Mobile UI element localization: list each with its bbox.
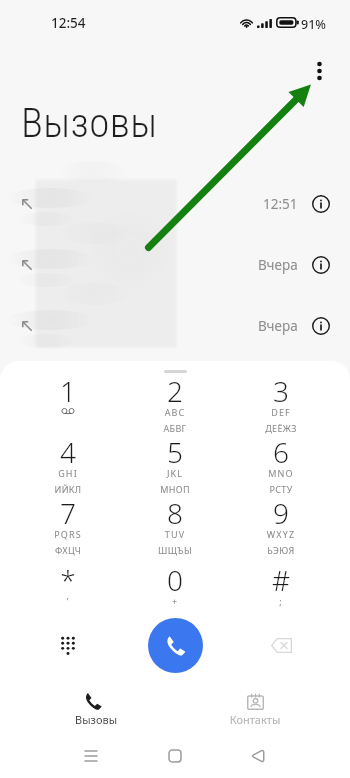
button[interactable]: Back [241, 739, 275, 773]
staticText: PQRS [20, 528, 116, 540]
staticText: Вызовы [21, 99, 158, 147]
button[interactable]: 7 [20, 494, 116, 550]
staticText: ЬЭЮЯ [233, 544, 329, 556]
button[interactable]: 8 [127, 494, 223, 550]
staticText: МНОП [127, 483, 223, 495]
staticText: TUV [127, 528, 223, 540]
staticText: ; [233, 595, 329, 607]
button[interactable]: Вызовы [46, 678, 146, 735]
button[interactable]: 6 [233, 433, 329, 489]
button[interactable]: Call details [307, 190, 335, 218]
button[interactable]: 4 [20, 433, 116, 489]
button[interactable]: Вчера [0, 295, 350, 356]
staticText: 8 [127, 494, 223, 532]
staticText: 91% [301, 16, 326, 33]
button[interactable]: More options [305, 57, 333, 85]
button[interactable]: 1 [20, 372, 116, 428]
button[interactable]: Keypad [46, 623, 90, 667]
staticText: Вызовы [46, 712, 146, 727]
staticText: ФХЦЧ [20, 544, 116, 556]
staticText: 7 [20, 494, 116, 532]
button[interactable]: Recent apps [74, 739, 108, 773]
button[interactable]: 12:51 [0, 173, 350, 234]
staticText: Контакты [205, 712, 305, 727]
staticText: DEF [233, 406, 329, 418]
staticText: 9 [233, 494, 329, 532]
staticText: ДЕЁЖЗ [233, 422, 329, 434]
staticText: + [127, 595, 223, 607]
staticText: GHI [20, 467, 116, 479]
staticText: 1 [20, 372, 116, 410]
button[interactable]: Home [158, 739, 192, 773]
button[interactable]: Вчера [0, 234, 350, 295]
staticText: JKL [127, 467, 223, 479]
staticText: 12:54 [51, 14, 86, 32]
staticText: Вчера [258, 256, 298, 274]
button[interactable]: 3 [233, 372, 329, 428]
staticText: ШЩЪЫ [127, 544, 223, 556]
button[interactable]: 9 [233, 494, 329, 550]
button[interactable]: Контакты [205, 678, 305, 735]
button[interactable]: 0 [127, 561, 223, 617]
staticText: ABC [127, 406, 223, 418]
staticText: 0 [127, 561, 223, 599]
staticText: # [233, 561, 329, 599]
button[interactable]: 2 [127, 372, 223, 428]
staticText: 12:51 [263, 195, 298, 213]
staticText: 2 [127, 372, 223, 410]
staticText: 5 [127, 433, 223, 471]
staticText: 6 [233, 433, 329, 471]
button[interactable]: # [233, 561, 329, 617]
staticText: АБВГ [127, 422, 223, 434]
staticText: * [20, 561, 116, 599]
button[interactable]: 5 [127, 433, 223, 489]
button[interactable]: Call details [307, 251, 335, 279]
staticText: 4 [20, 433, 116, 471]
button[interactable]: * [20, 561, 116, 617]
button[interactable]: Call [148, 618, 203, 673]
staticText: ИЙКЛ [20, 483, 116, 495]
staticText: MNO [233, 467, 329, 479]
button[interactable]: Backspace [259, 623, 303, 667]
staticText: РСТУ [233, 483, 329, 495]
staticText: ’ [20, 595, 116, 607]
staticText: WXYZ [233, 528, 329, 540]
staticText: Вчера [258, 317, 298, 335]
button[interactable]: Call details [307, 312, 335, 340]
staticText: 3 [233, 372, 329, 410]
